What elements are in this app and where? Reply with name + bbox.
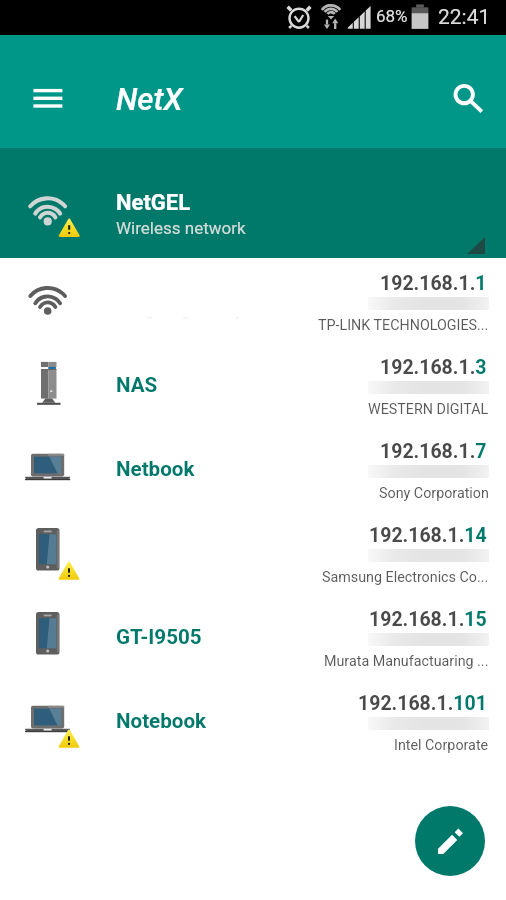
staticText: 192.168.1.14 [369,524,487,547]
staticText: 22:41 [438,5,491,30]
button[interactable]: 192.168.1.1 [0,258,506,342]
staticText: Samsung Electronics Co... [322,569,489,586]
staticText: WESTERN DIGITAL [368,401,489,418]
button[interactable]: Open navigation menu [13,55,83,127]
button[interactable]: NAS [0,342,506,426]
staticText: Notebook [116,709,207,733]
staticText: 192.168.1.1 [380,272,487,295]
button[interactable]: Netbook [0,426,506,510]
staticText: NetGEL [116,190,191,216]
staticText: NetX [116,81,183,117]
staticText: GT-I9505 [116,625,202,649]
staticText: Murata Manufactuaring ... [324,653,489,670]
staticText: 192.168.1.3 [380,356,487,379]
button[interactable]: 192.168.1.14 [0,510,506,594]
button[interactable]: Edit [415,806,485,876]
staticText: Netbook [116,457,195,481]
staticText: 68% [376,6,408,26]
staticText: Intel Corporate [394,737,489,754]
staticText: Sony Corporation [379,485,489,502]
button[interactable]: NetGEL [0,148,506,258]
button[interactable]: GT-I9505 [0,594,506,678]
staticText: 192.168.1.15 [369,608,487,631]
button[interactable]: Search [428,55,498,127]
staticText: TP-LINK TECHNOLOGIES... [318,317,489,334]
button[interactable]: Notebook [0,678,506,762]
staticText: 192.168.1.101 [358,692,487,715]
staticText: Wireless network [116,218,246,238]
staticText: 192.168.1.7 [380,440,487,463]
staticText: NAS [116,373,158,397]
